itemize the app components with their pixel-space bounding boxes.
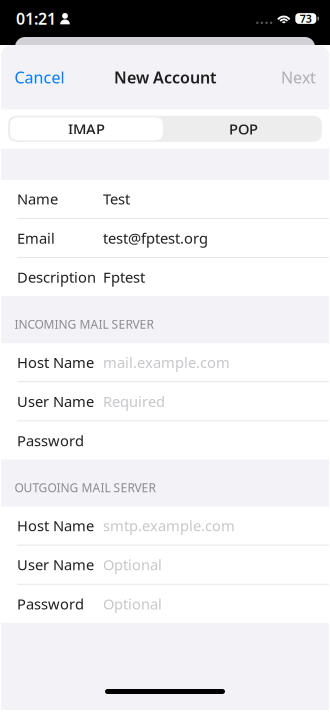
button[interactable]: User Name xyxy=(1,546,329,584)
staticText: test@fptest.org xyxy=(103,228,208,248)
button[interactable]: Cancel xyxy=(1,55,78,99)
staticText: Fptest xyxy=(103,267,145,287)
button[interactable]: Name xyxy=(1,180,329,218)
staticText: User Name xyxy=(17,392,94,411)
staticText: mail.example.com xyxy=(103,352,230,372)
staticText: Test xyxy=(103,189,130,209)
staticText: Optional xyxy=(103,594,162,613)
staticText: New Account xyxy=(114,67,216,88)
staticText: POP xyxy=(229,119,258,139)
staticText: Name xyxy=(17,189,58,209)
staticText: Email xyxy=(17,228,55,248)
button[interactable]: IMAP xyxy=(8,115,165,142)
staticText: IMAP xyxy=(68,119,105,139)
button[interactable]: Password xyxy=(1,585,329,623)
staticText: smtp.example.com xyxy=(103,516,235,535)
button[interactable]: User Name xyxy=(1,382,329,420)
staticText: Host Name xyxy=(17,352,94,372)
staticText: OUTGOING MAIL SERVER xyxy=(14,479,155,495)
staticText: 73 xyxy=(300,11,312,26)
button[interactable]: Email xyxy=(1,219,329,257)
staticText: Optional xyxy=(103,555,162,574)
staticText: Description xyxy=(17,267,96,287)
button[interactable]: Password xyxy=(1,421,329,459)
button[interactable]: Next xyxy=(268,55,329,99)
staticText: Next xyxy=(281,67,316,88)
staticText: Password xyxy=(17,431,84,450)
staticText: User Name xyxy=(17,555,94,574)
staticText: Host Name xyxy=(17,516,94,535)
button[interactable]: Description xyxy=(1,258,329,296)
staticText: INCOMING MAIL SERVER xyxy=(14,316,153,332)
button[interactable]: POP xyxy=(165,115,322,142)
staticText: Cancel xyxy=(14,67,64,88)
staticText: Required xyxy=(103,392,165,411)
button[interactable]: Host Name xyxy=(1,343,329,381)
staticText: 01:21 xyxy=(16,8,56,29)
button[interactable]: Host Name xyxy=(1,506,329,545)
staticText: Password xyxy=(17,594,84,613)
